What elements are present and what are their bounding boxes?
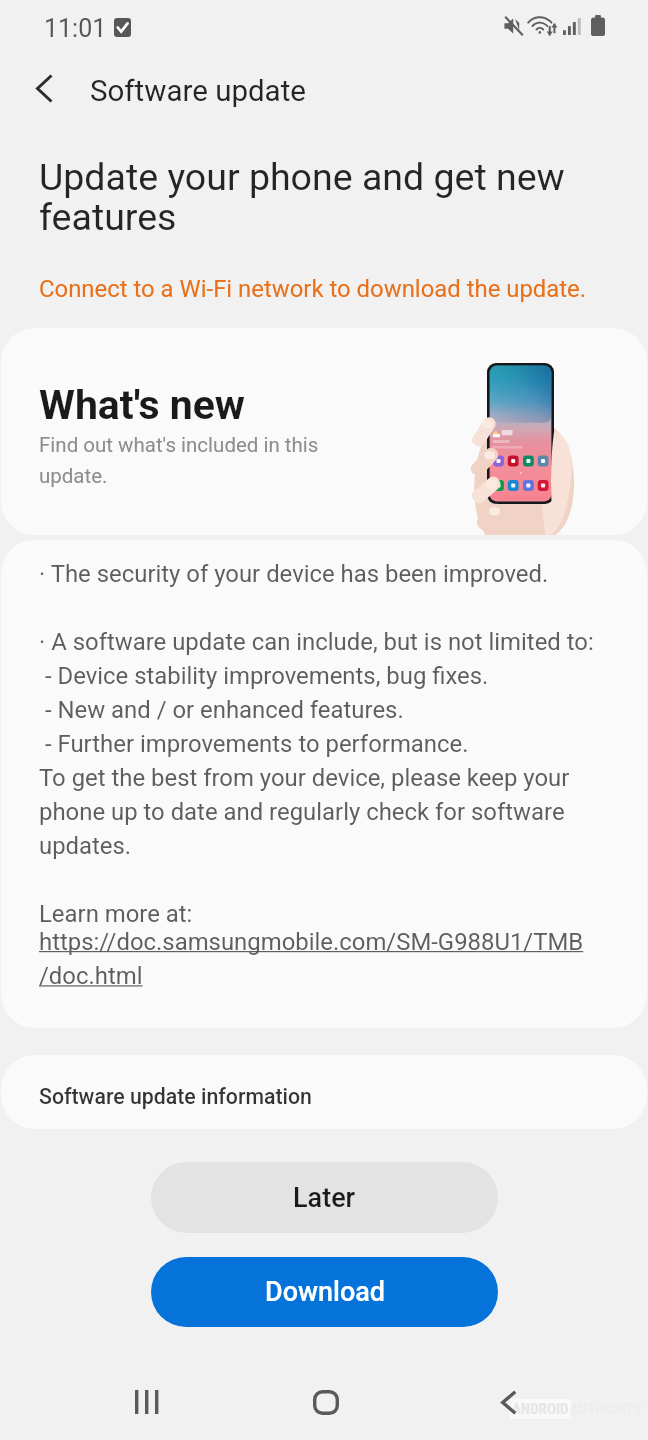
button[interactable]: Back — [473, 1366, 545, 1438]
button[interactable]: Recent apps — [110, 1366, 182, 1438]
staticText: · The security of your device has been i… — [39, 560, 594, 928]
staticText: Software update information — [39, 1084, 312, 1109]
staticText: Update your phone and get new features — [39, 155, 599, 240]
button[interactable]: Home — [290, 1366, 362, 1438]
staticText: Find out what's included in this update. — [39, 433, 324, 488]
staticText: 11:01 — [44, 14, 107, 43]
button[interactable]: Later — [151, 1162, 498, 1233]
staticText: Later — [293, 1182, 356, 1214]
button[interactable]: What's new — [1, 328, 647, 535]
staticText: Connect to a Wi-Fi network to download t… — [39, 275, 587, 303]
staticText: ANDROID — [512, 1400, 569, 1418]
button[interactable]: Back — [20, 64, 68, 112]
staticText: What's new — [39, 381, 245, 429]
button[interactable]: Software update information — [1, 1055, 647, 1129]
staticText: Download — [265, 1276, 385, 1308]
staticText: Software update — [90, 74, 306, 109]
staticText: https://doc.samsungmobile.com/SM-G988U1/… — [39, 928, 584, 990]
button[interactable]: Download — [151, 1257, 498, 1327]
